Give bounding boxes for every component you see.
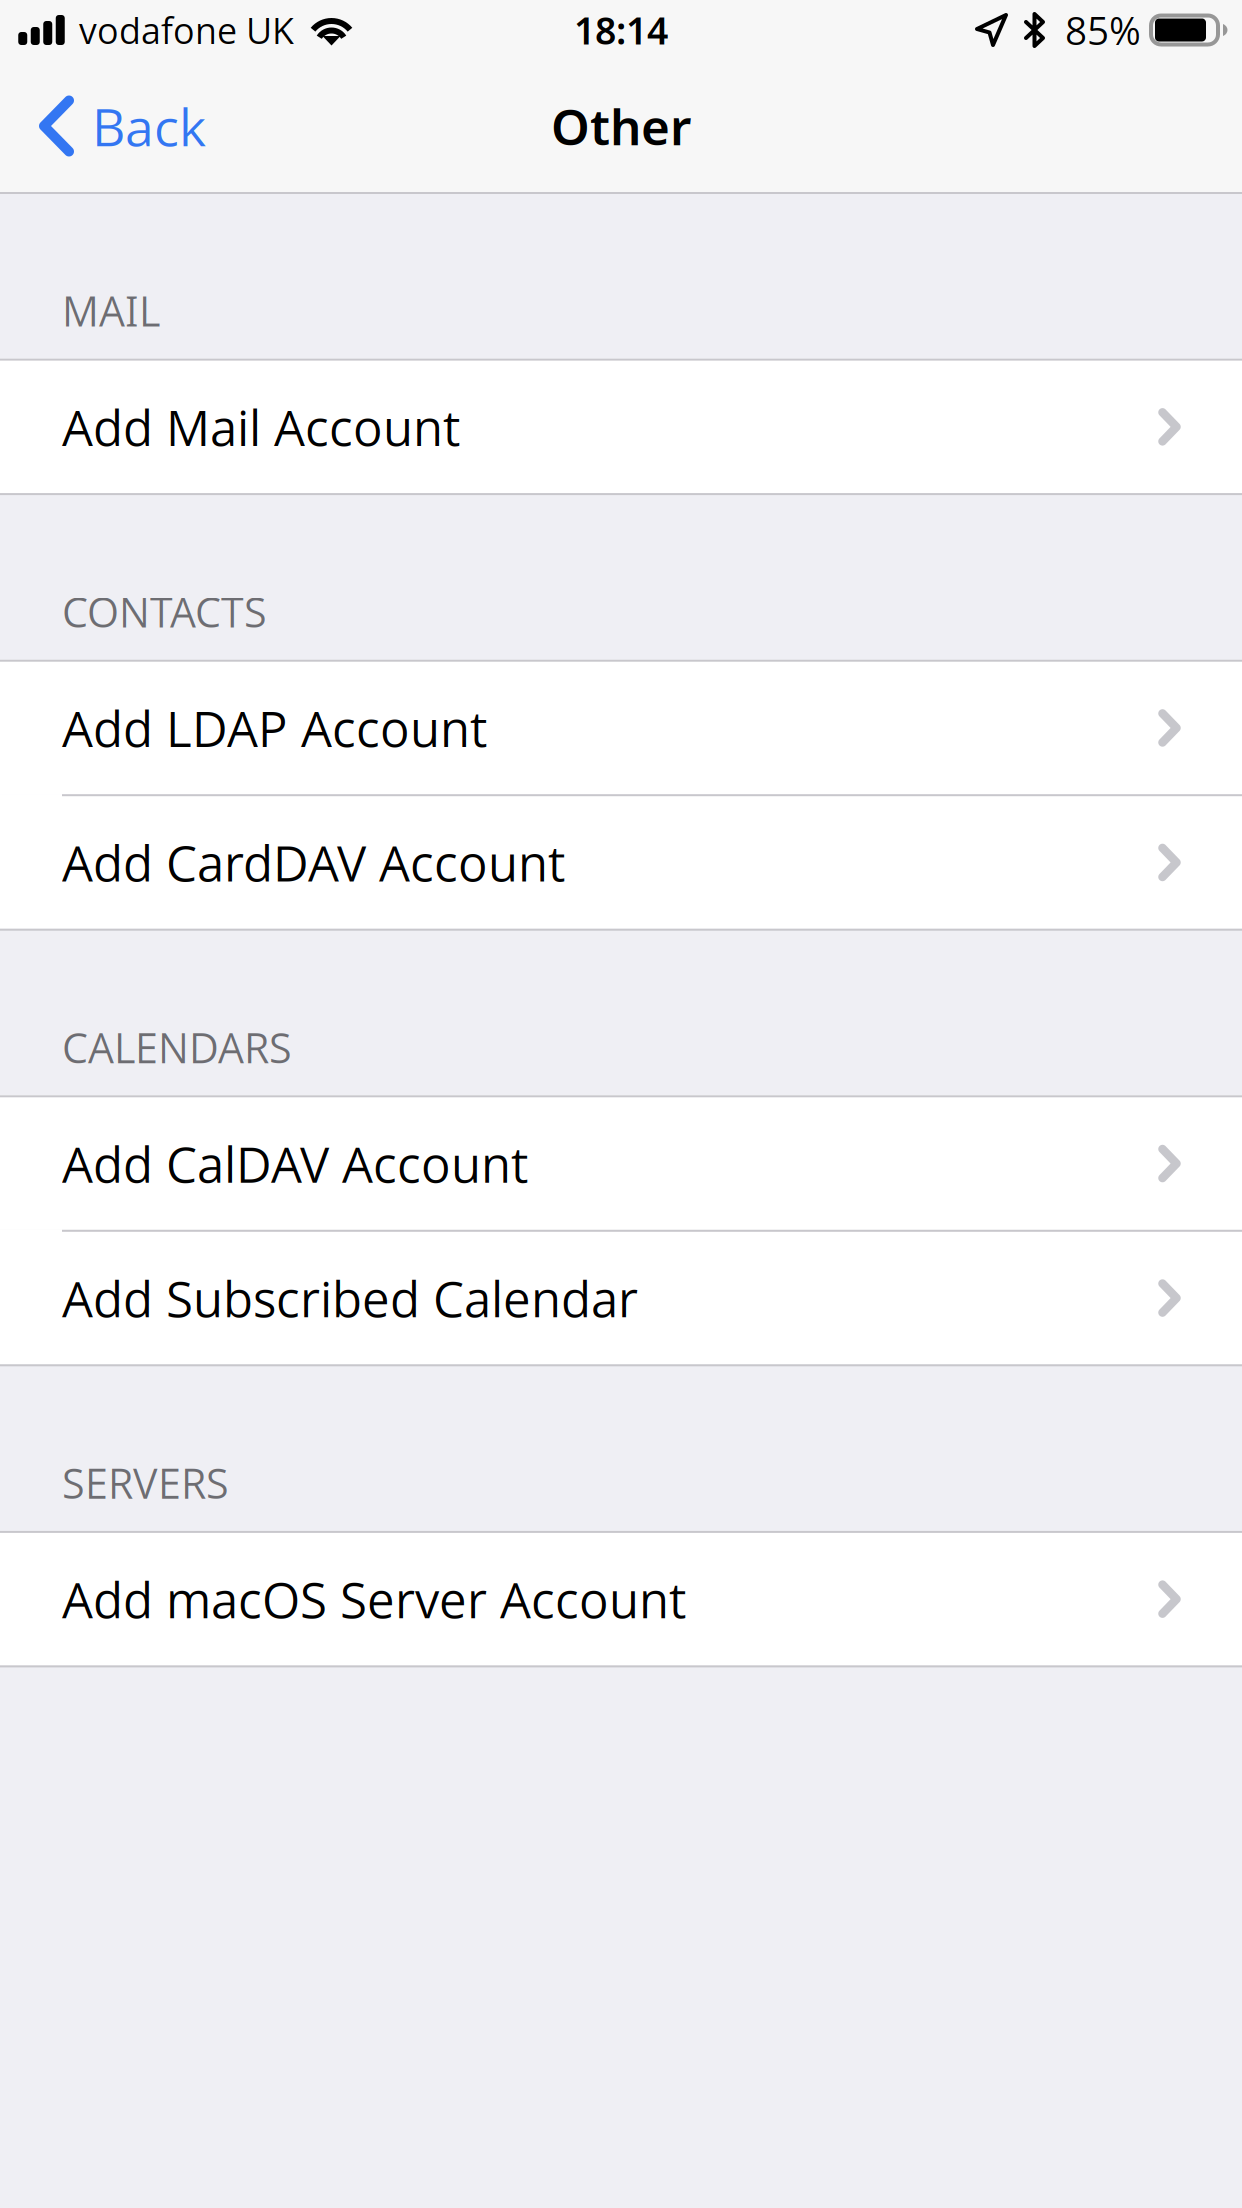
button[interactable]: Add CardDAV Account	[0, 794, 1242, 929]
staticText: 85%	[1065, 4, 1141, 56]
staticText: Add Mail Account	[62, 393, 460, 460]
staticText: Add CalDAV Account	[62, 1130, 528, 1197]
button[interactable]: Add Subscribed Calendar	[0, 1230, 1242, 1364]
button[interactable]: Back	[0, 60, 228, 192]
staticText: Other	[551, 92, 691, 160]
button[interactable]: Add CalDAV Account	[0, 1095, 1242, 1230]
staticText: CONTACTS	[62, 583, 267, 640]
staticText: Add Subscribed Calendar	[62, 1264, 638, 1332]
button[interactable]: Add Mail Account	[0, 359, 1242, 493]
button[interactable]: Add macOS Server Account	[0, 1531, 1242, 1665]
staticText: Add macOS Server Account	[62, 1566, 686, 1633]
staticText: Add CardDAV Account	[62, 829, 565, 896]
staticText: vodafone UK	[79, 5, 294, 54]
staticText: SERVERS	[62, 1455, 229, 1511]
staticText: Add LDAP Account	[62, 694, 487, 762]
staticText: CALENDARS	[62, 1019, 292, 1075]
staticText: MAIL	[62, 282, 160, 339]
staticText: Back	[92, 91, 206, 161]
button[interactable]: Add LDAP Account	[0, 660, 1242, 794]
staticText: 18:14	[574, 5, 668, 55]
